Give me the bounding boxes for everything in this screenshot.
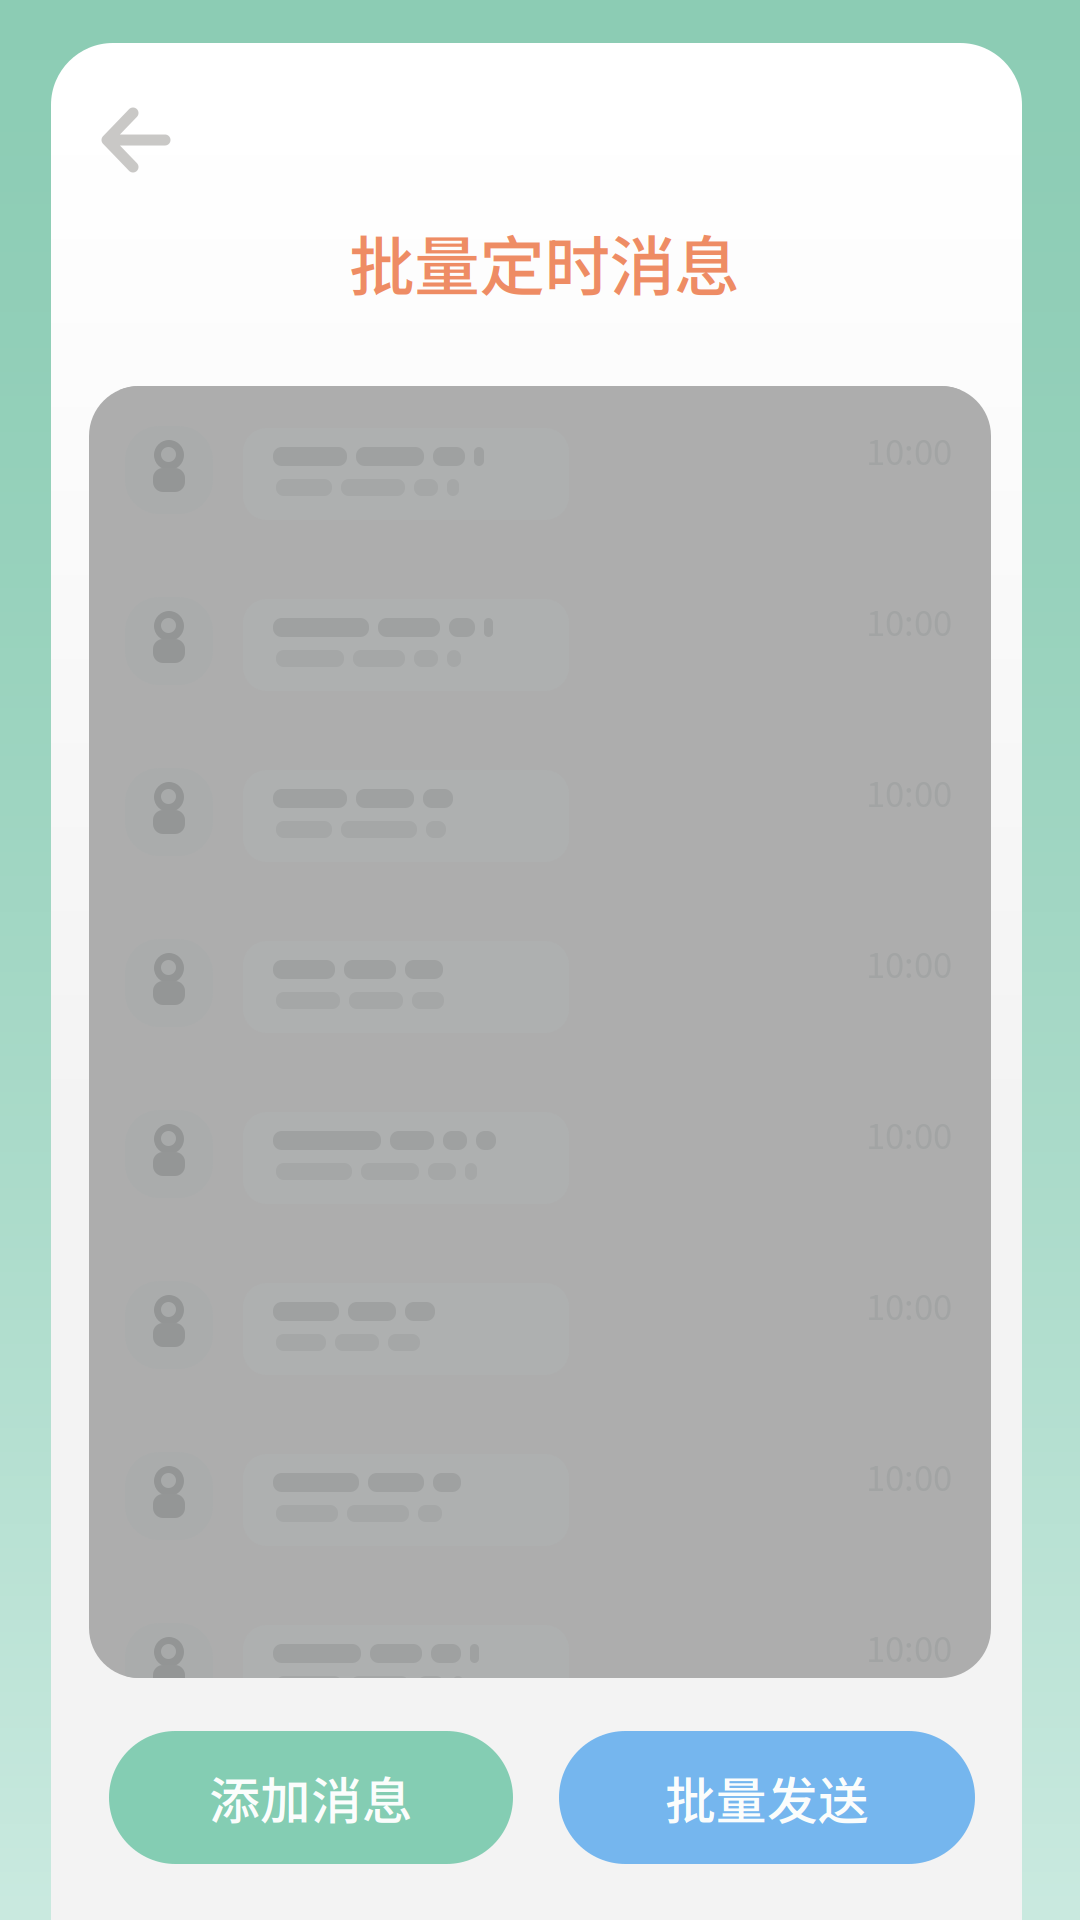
button[interactable]: Back [77, 85, 197, 195]
staticText: 10:00 [866, 425, 952, 475]
staticText: 10:00 [866, 1451, 952, 1501]
staticText: 10:00 [866, 767, 952, 817]
staticText: 10:00 [866, 938, 952, 988]
staticText: 批量发送 [665, 1761, 869, 1834]
staticText: 10:00 [866, 596, 952, 646]
staticText: 批量定时消息 [349, 215, 739, 309]
staticText: 10:00 [866, 1622, 952, 1672]
staticText: 10:00 [866, 1280, 952, 1330]
staticText: 10:00 [866, 1109, 952, 1159]
button[interactable]: 批量发送 [559, 1731, 975, 1864]
staticText: 添加消息 [209, 1761, 413, 1834]
button[interactable]: 添加消息 [109, 1731, 513, 1864]
